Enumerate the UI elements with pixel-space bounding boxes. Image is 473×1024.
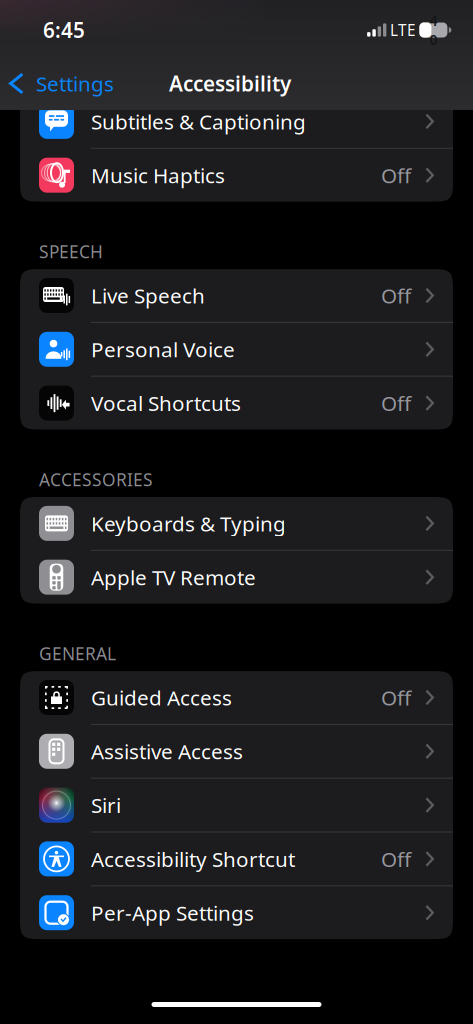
staticText: Settings — [36, 69, 114, 97]
staticText: Guided Access — [91, 683, 232, 711]
staticText: Live Speech — [91, 281, 205, 309]
staticText: Accessibility — [169, 69, 291, 97]
staticText: Subtitles & Captioning — [91, 107, 306, 135]
staticText: Personal Voice — [91, 335, 235, 363]
button[interactable]: Keyboards & Typing — [20, 497, 453, 550]
staticText: Keyboards & Typing — [91, 509, 286, 537]
button[interactable]: Live Speech — [20, 269, 453, 322]
button[interactable]: Subtitles & Captioning — [20, 95, 453, 148]
staticText: Vocal Shortcuts — [91, 389, 241, 417]
button[interactable]: Assistive Access — [20, 725, 453, 778]
staticText: Siri — [91, 791, 121, 819]
button[interactable]: Accessibility Shortcut — [20, 832, 453, 885]
staticText: 40 — [429, 11, 437, 49]
staticText: LTE — [390, 20, 416, 40]
staticText: SPEECH — [39, 240, 103, 263]
staticText: ACCESSORIES — [39, 468, 153, 491]
button[interactable]: Siri — [20, 779, 453, 831]
staticText: Assistive Access — [91, 737, 243, 765]
staticText: Off — [381, 281, 411, 309]
button[interactable]: Music Haptics — [20, 149, 453, 202]
button[interactable]: Vocal Shortcuts — [20, 377, 453, 429]
staticText: 6:45 — [43, 16, 85, 44]
staticText: Off — [381, 683, 411, 711]
button[interactable]: Settings — [0, 62, 122, 104]
staticText: Music Haptics — [91, 161, 225, 189]
button[interactable]: Personal Voice — [20, 323, 453, 376]
button[interactable]: Guided Access — [20, 671, 453, 724]
button[interactable]: Apple TV Remote — [20, 551, 453, 604]
staticText: Off — [381, 845, 411, 873]
staticText: Off — [381, 161, 411, 189]
staticText: Per-App Settings — [91, 899, 254, 927]
staticText: Apple TV Remote — [91, 563, 256, 591]
staticText: GENERAL — [39, 642, 116, 665]
staticText: Accessibility Shortcut — [91, 845, 295, 873]
button[interactable]: Per-App Settings — [20, 886, 453, 939]
staticText: Off — [381, 389, 411, 417]
